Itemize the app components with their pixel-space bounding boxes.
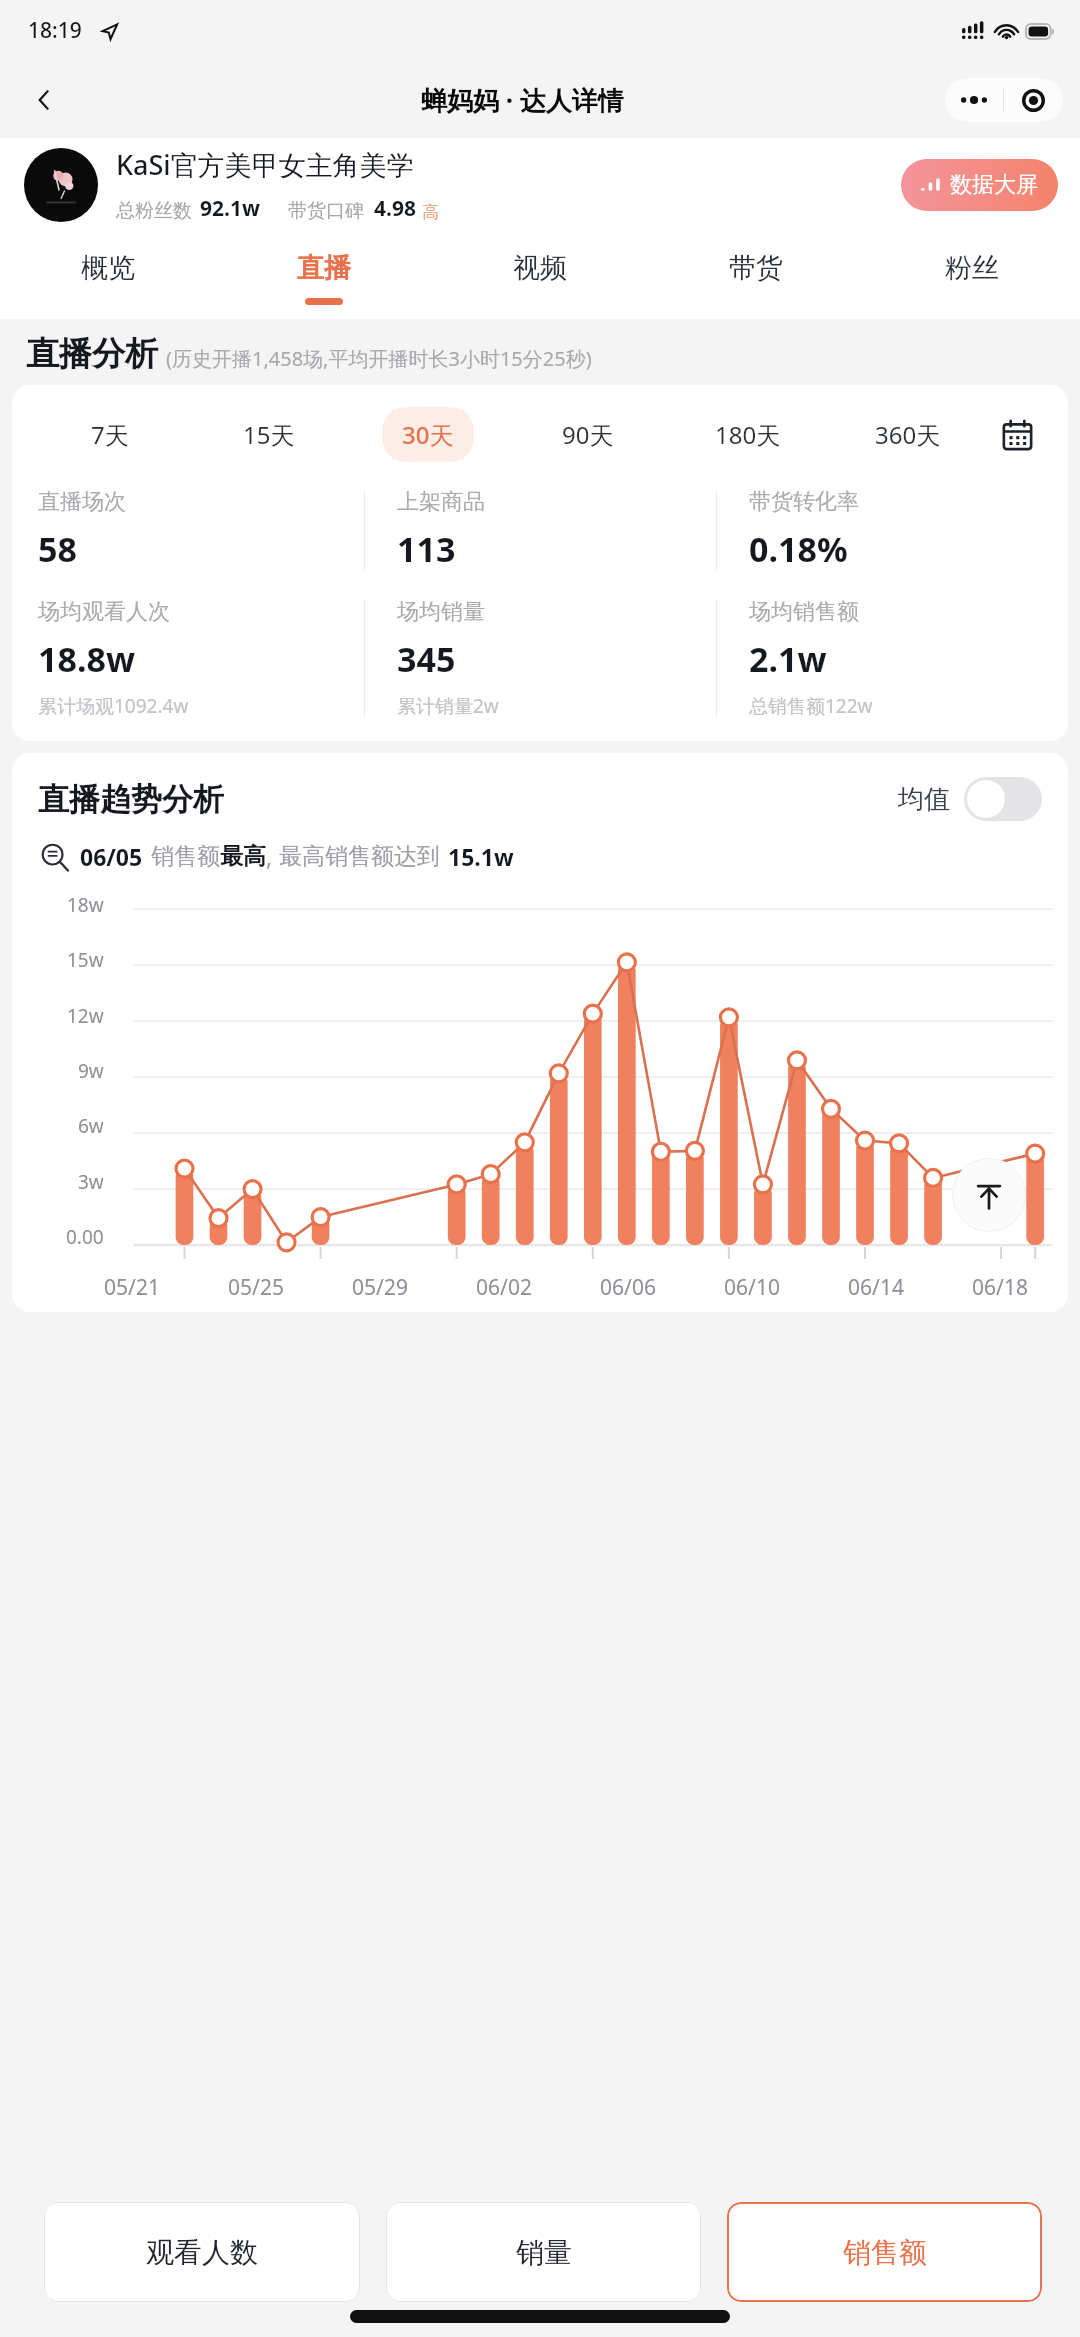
button[interactable]: Scroll to top (952, 1158, 1026, 1232)
staticText: 18:19 (28, 16, 82, 45)
staticText: 15.1w (448, 841, 514, 872)
staticText: 总粉丝数 (116, 199, 192, 223)
staticText: 最高销售额达到 (279, 842, 440, 871)
staticText: 直播 (297, 251, 351, 285)
staticText: 累计场观1092.4w (38, 693, 189, 719)
staticText: 06/18 (972, 1273, 1028, 1302)
button[interactable]: Pick date range (988, 411, 1046, 459)
staticText: 观看人数 (146, 2235, 258, 2270)
staticText: 12w (67, 1003, 104, 1029)
staticText: 2.1w (749, 636, 827, 682)
button[interactable]: 15天 (189, 407, 348, 462)
staticText: 58 (38, 526, 77, 572)
staticText: 06/05 (80, 841, 143, 872)
staticText: 直播分析 (26, 333, 158, 375)
button[interactable]: 30天 (348, 407, 508, 462)
button[interactable]: 180天 (668, 407, 828, 462)
staticText: 06/14 (848, 1273, 904, 1302)
staticText: 30天 (402, 418, 454, 451)
staticText: 18w (67, 892, 104, 918)
button[interactable]: 360天 (828, 407, 988, 462)
button[interactable]: Back (20, 75, 70, 125)
staticText: 均值 (898, 783, 950, 816)
staticText: 粉丝 (945, 251, 999, 285)
button[interactable]: 90天 (508, 407, 668, 462)
staticText: 180天 (715, 418, 781, 451)
staticText: 场均销售额 (749, 598, 859, 626)
button[interactable]: 直播 (216, 239, 432, 317)
staticText: 0.18% (749, 526, 848, 572)
staticText: 场均销量 (397, 598, 485, 626)
staticText: 销售额 (151, 842, 220, 871)
staticText: 06/02 (476, 1273, 532, 1302)
staticText: 数据大屏 (950, 171, 1038, 199)
button[interactable]: 粉丝 (864, 239, 1080, 317)
button[interactable]: 销量 (386, 2202, 701, 2302)
staticText: 概览 (81, 251, 135, 285)
staticText: 视频 (513, 251, 567, 285)
staticText: 05/21 (104, 1273, 160, 1302)
staticText: 带货转化率 (749, 488, 859, 516)
staticText: 最高 (220, 842, 266, 871)
button[interactable]: More (945, 78, 1003, 122)
staticText: 113 (397, 526, 456, 572)
staticText: 蝉妈妈 · 达人详情 (421, 82, 624, 118)
staticText: KaSi官方美甲女主角美学 (116, 146, 414, 183)
staticText: 场均观看人次 (38, 598, 170, 626)
staticText: 销量 (516, 2235, 572, 2270)
button[interactable]: Average toggle (964, 777, 1042, 821)
staticText: 4.98 (374, 194, 416, 223)
staticText: 90天 (562, 418, 614, 451)
staticText: 直播趋势分析 (38, 780, 224, 819)
staticText: 06/10 (724, 1273, 780, 1302)
staticText: 7天 (91, 418, 129, 451)
button[interactable]: 带货 (648, 239, 864, 317)
staticText: 06/06 (600, 1273, 656, 1302)
staticText: 05/25 (228, 1273, 284, 1302)
button[interactable]: 观看人数 (44, 2202, 360, 2302)
staticText: 15w (67, 947, 104, 973)
staticText: 18.8w (38, 636, 136, 682)
staticText: 总销售额122w (749, 693, 873, 719)
staticText: 上架商品 (397, 488, 485, 516)
staticText: 360天 (875, 418, 941, 451)
staticText: 销售额 (843, 2235, 927, 2270)
staticText: 15天 (243, 418, 295, 451)
staticText: 累计销量2w (397, 693, 499, 719)
button[interactable]: 视频 (432, 239, 648, 317)
button[interactable]: 数据大屏 (901, 159, 1058, 211)
staticText: , (266, 841, 273, 872)
staticText: 带货 (729, 251, 783, 285)
staticText: 3w (78, 1169, 104, 1195)
button[interactable]: 7天 (30, 407, 189, 462)
staticText: 9w (78, 1058, 104, 1084)
staticText: 直播场次 (38, 488, 126, 516)
button[interactable]: Close (1004, 78, 1063, 122)
staticText: 345 (397, 636, 456, 682)
staticText: 92.1w (200, 194, 260, 223)
staticText: 0.00 (66, 1224, 104, 1250)
button[interactable]: 概览 (0, 239, 216, 317)
staticText: 6w (78, 1113, 104, 1139)
staticText: 05/29 (352, 1273, 408, 1302)
staticText: (历史开播1,458场,平均开播时长3小时15分25秒) (166, 345, 592, 372)
button[interactable]: 销售额 (727, 2202, 1042, 2302)
staticText: 高 (422, 202, 439, 223)
staticText: 带货口碑 (288, 199, 364, 223)
